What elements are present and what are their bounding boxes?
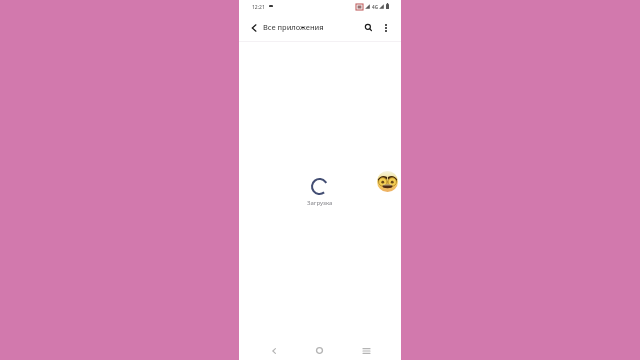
staticText: 4G (372, 4, 378, 10)
button[interactable]: Back (245, 19, 263, 37)
button[interactable]: Search (359, 18, 377, 36)
button[interactable]: Recent apps (357, 342, 375, 360)
button[interactable]: Home (310, 341, 328, 359)
staticText: Все приложения (263, 22, 324, 32)
button[interactable]: Back (265, 342, 283, 360)
button[interactable]: More options (377, 19, 395, 37)
staticText: Загрузка (307, 199, 333, 207)
staticText: 12:21 (252, 4, 265, 11)
